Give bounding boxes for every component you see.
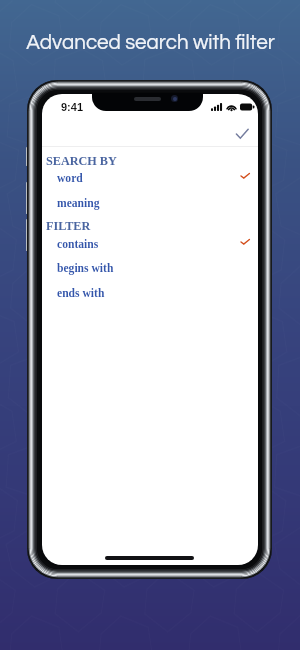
staticText: FILTER bbox=[46, 219, 91, 233]
button[interactable]: contains bbox=[42, 233, 258, 255]
staticText: Advanced search with filter bbox=[26, 32, 275, 53]
staticText: begins with bbox=[57, 262, 114, 275]
button[interactable]: ends with bbox=[42, 282, 258, 304]
button[interactable]: Apply filter bbox=[230, 122, 254, 146]
staticText: meaning bbox=[57, 197, 100, 210]
staticText: ends with bbox=[57, 287, 105, 300]
staticText: 9:41 bbox=[61, 101, 84, 113]
staticText: contains bbox=[57, 238, 99, 251]
button[interactable]: word bbox=[42, 167, 258, 189]
button[interactable]: meaning bbox=[42, 192, 258, 214]
button[interactable]: begins with bbox=[42, 257, 258, 279]
staticText: word bbox=[57, 172, 83, 185]
staticText: SEARCH BY bbox=[46, 154, 117, 168]
